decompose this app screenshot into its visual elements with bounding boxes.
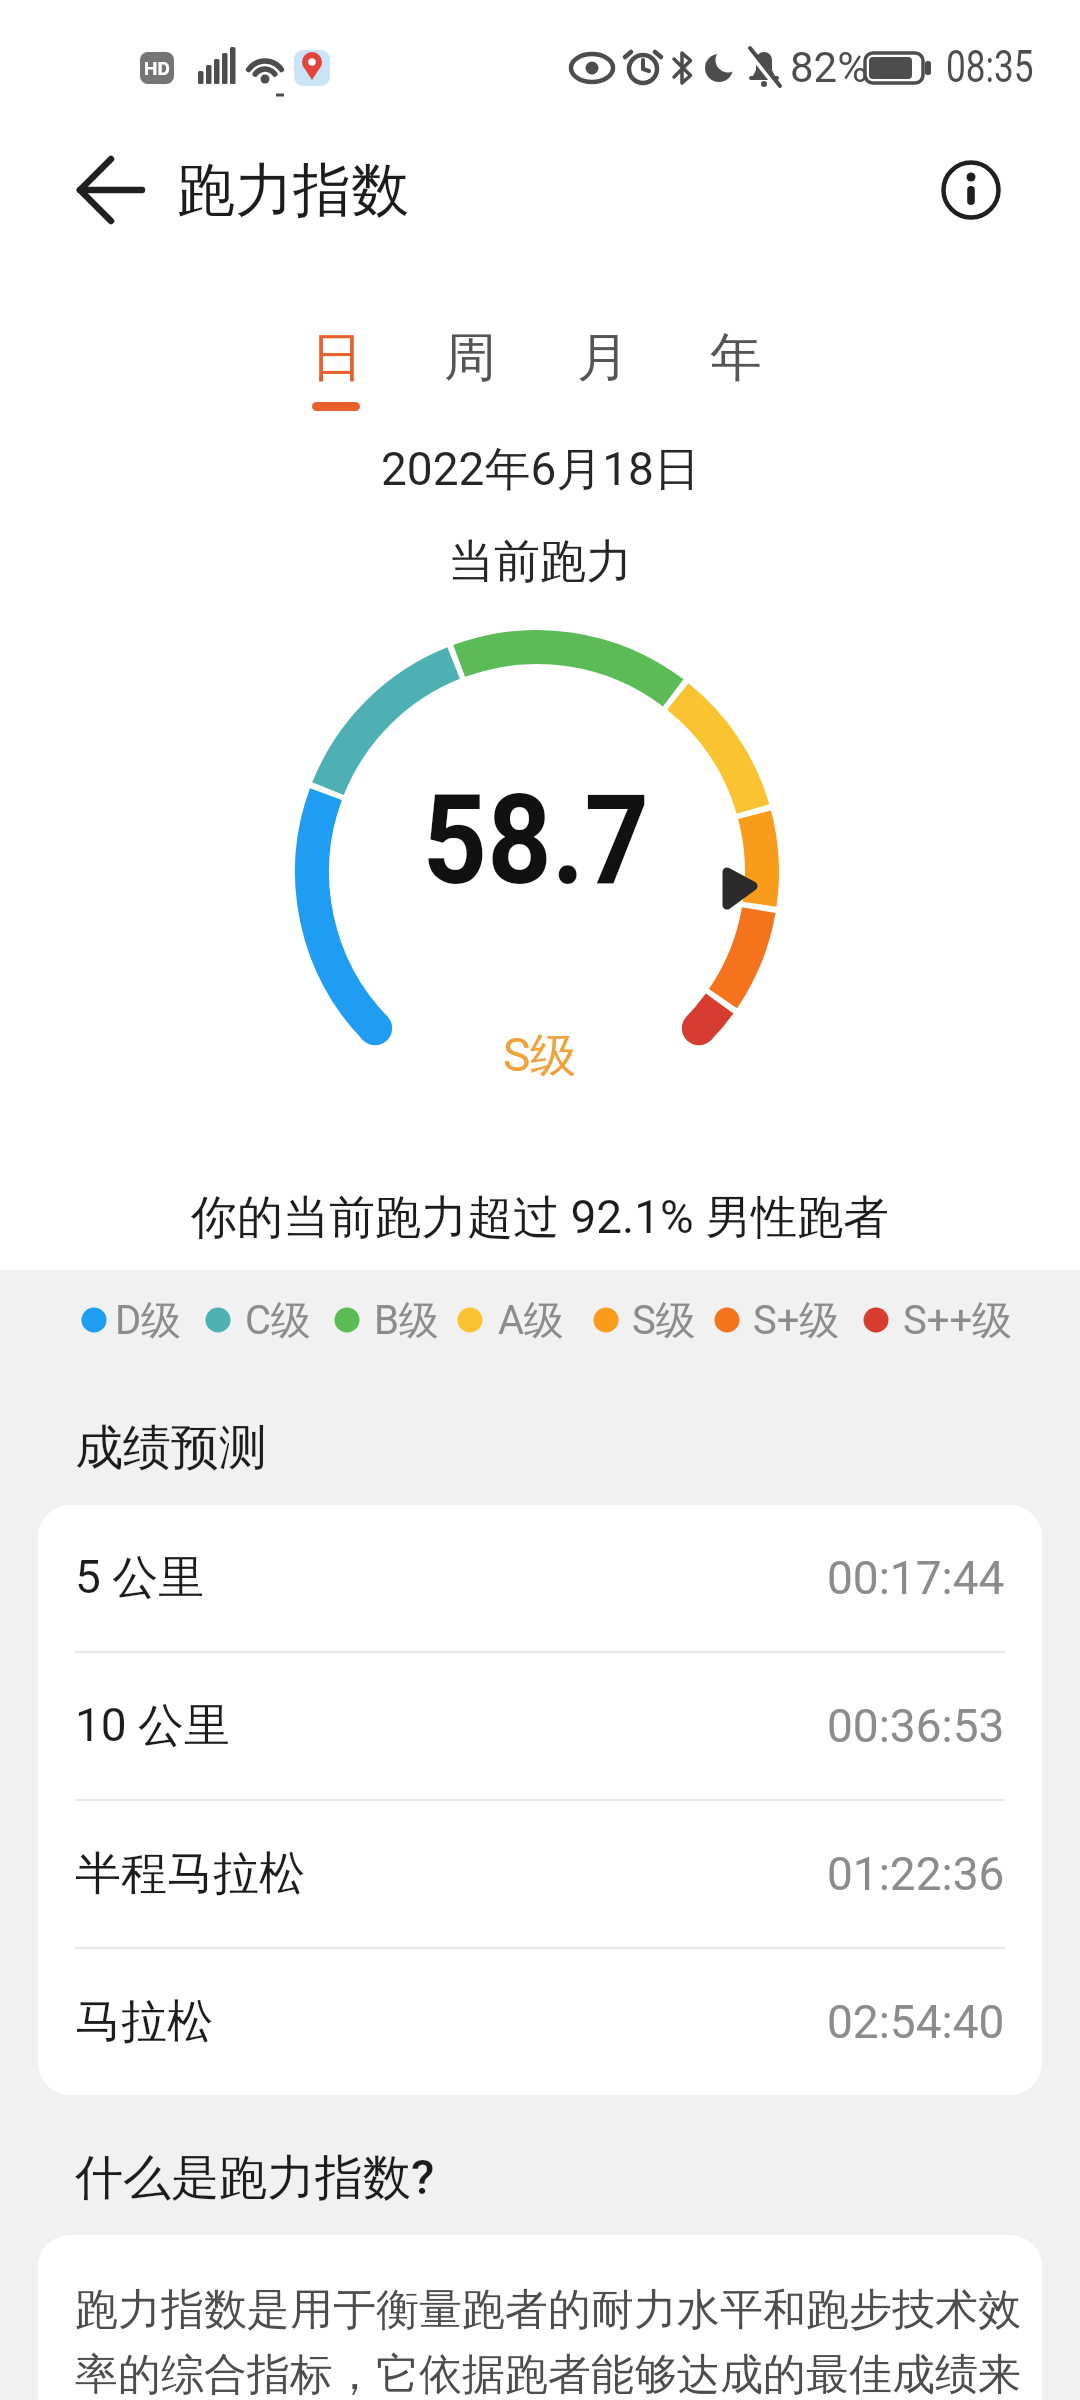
button[interactable]: 年: [669, 322, 802, 394]
staticText: 周: [444, 325, 496, 391]
staticText: 82%: [790, 43, 868, 92]
button[interactable]: 马拉松: [38, 1949, 1042, 2095]
staticText: 5 公里: [75, 1549, 205, 1607]
button[interactable]: 日: [270, 322, 403, 394]
staticText: 02:54:40: [827, 1995, 1005, 2049]
staticText: 马拉松: [75, 1993, 213, 2051]
staticText: HD: [144, 57, 170, 79]
staticText: 跑力指数是用于衡量跑者的耐力水平和跑步技术效 率的综合指标，它依据跑者能够达成的…: [75, 2283, 1021, 2400]
button[interactable]: [55, 148, 160, 233]
button[interactable]: 半程马拉松: [38, 1801, 1042, 1947]
staticText: 10 公里: [75, 1697, 231, 1755]
staticText: S级: [632, 1295, 696, 1345]
button[interactable]: 5 公里: [38, 1505, 1042, 1651]
staticText: 日: [311, 325, 363, 391]
staticText: S+级: [753, 1295, 840, 1345]
staticText: 当前跑力: [448, 533, 632, 591]
staticText: B级: [374, 1295, 439, 1345]
staticText: S++级: [903, 1295, 1013, 1345]
staticText: 什么是跑力指数?: [75, 2148, 435, 2208]
staticText: C级: [245, 1295, 312, 1345]
button[interactable]: [925, 148, 1020, 233]
staticText: S级: [503, 1027, 577, 1085]
button[interactable]: 10 公里: [38, 1653, 1042, 1799]
staticText: 你的当前跑力超过 92.1% 男性跑者: [191, 1189, 890, 1247]
button[interactable]: 周: [403, 322, 536, 394]
button[interactable]: 月: [536, 322, 669, 394]
staticText: 08:35: [946, 41, 1034, 93]
staticText: 月: [577, 325, 629, 391]
staticText: 年: [710, 325, 762, 391]
staticText: 00:36:53: [827, 1699, 1005, 1753]
staticText: 成绩预测: [75, 1418, 267, 1478]
staticText: D级: [115, 1295, 182, 1345]
staticText: 00:17:44: [827, 1551, 1005, 1605]
staticText: 跑力指数: [177, 154, 409, 227]
staticText: 01:22:36: [827, 1847, 1005, 1901]
staticText: A级: [498, 1295, 565, 1345]
staticText: 58.7: [423, 767, 649, 913]
staticText: 2022年6月18日: [381, 441, 700, 499]
staticText: 半程马拉松: [75, 1845, 305, 1903]
